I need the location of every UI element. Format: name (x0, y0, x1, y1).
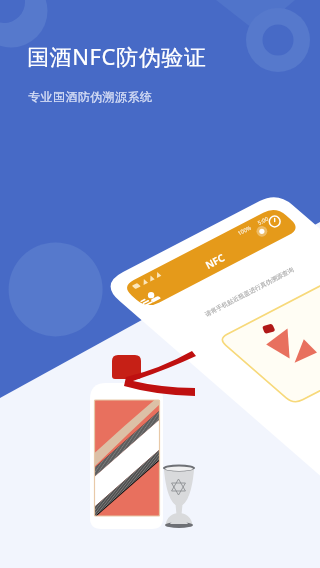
staticText: 国酒NFC防伪验证 (27, 41, 207, 71)
staticText: 专业国酒防伪溯源系统 (28, 89, 152, 104)
staticText: 请将手机贴近瓶盖进行真伪溯源查询 (204, 266, 295, 318)
staticText: 100% 5:00 (236, 214, 270, 236)
staticText: NFC (203, 250, 227, 272)
